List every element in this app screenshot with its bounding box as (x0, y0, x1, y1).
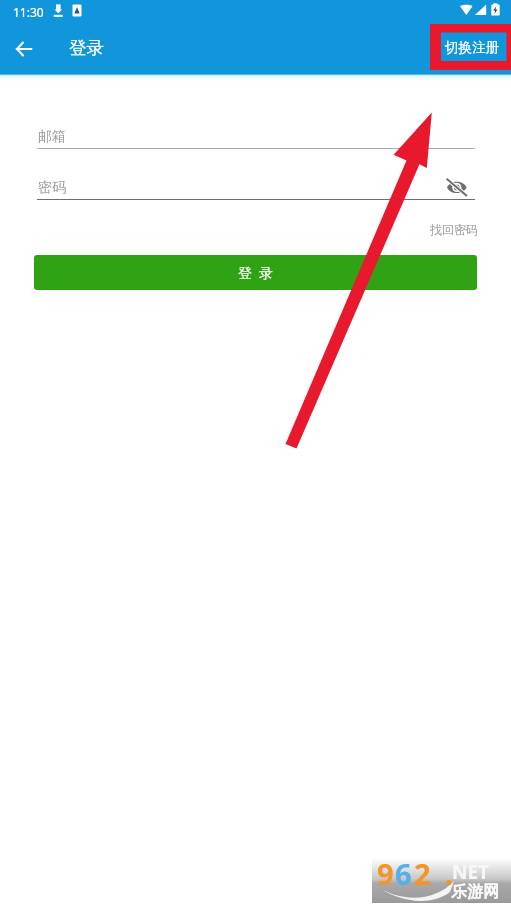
staticText: 登录 (69, 37, 104, 59)
staticText: 乐游网 (451, 882, 499, 902)
button[interactable]: 找回密码 (426, 218, 482, 241)
button[interactable]: Back (0, 26, 48, 74)
button[interactable]: 切换注册 (441, 26, 511, 70)
staticText: . (445, 854, 454, 893)
staticText: 密码 (38, 179, 66, 197)
staticText: 6 (395, 854, 412, 893)
staticText: 11:30 (13, 4, 44, 20)
button[interactable]: Toggle password visibility (437, 168, 477, 208)
button[interactable]: 密码 (37, 173, 475, 200)
button[interactable]: 邮箱 (37, 122, 475, 149)
staticText: 切换注册 (445, 39, 500, 56)
staticText: 9 (377, 854, 394, 893)
staticText: NET (452, 859, 490, 885)
staticText: 邮箱 (38, 128, 66, 146)
staticText: 2 (414, 854, 431, 893)
button[interactable]: 登 录 (34, 255, 477, 290)
staticText: 找回密码 (430, 222, 478, 237)
staticText: 登 录 (238, 263, 274, 282)
